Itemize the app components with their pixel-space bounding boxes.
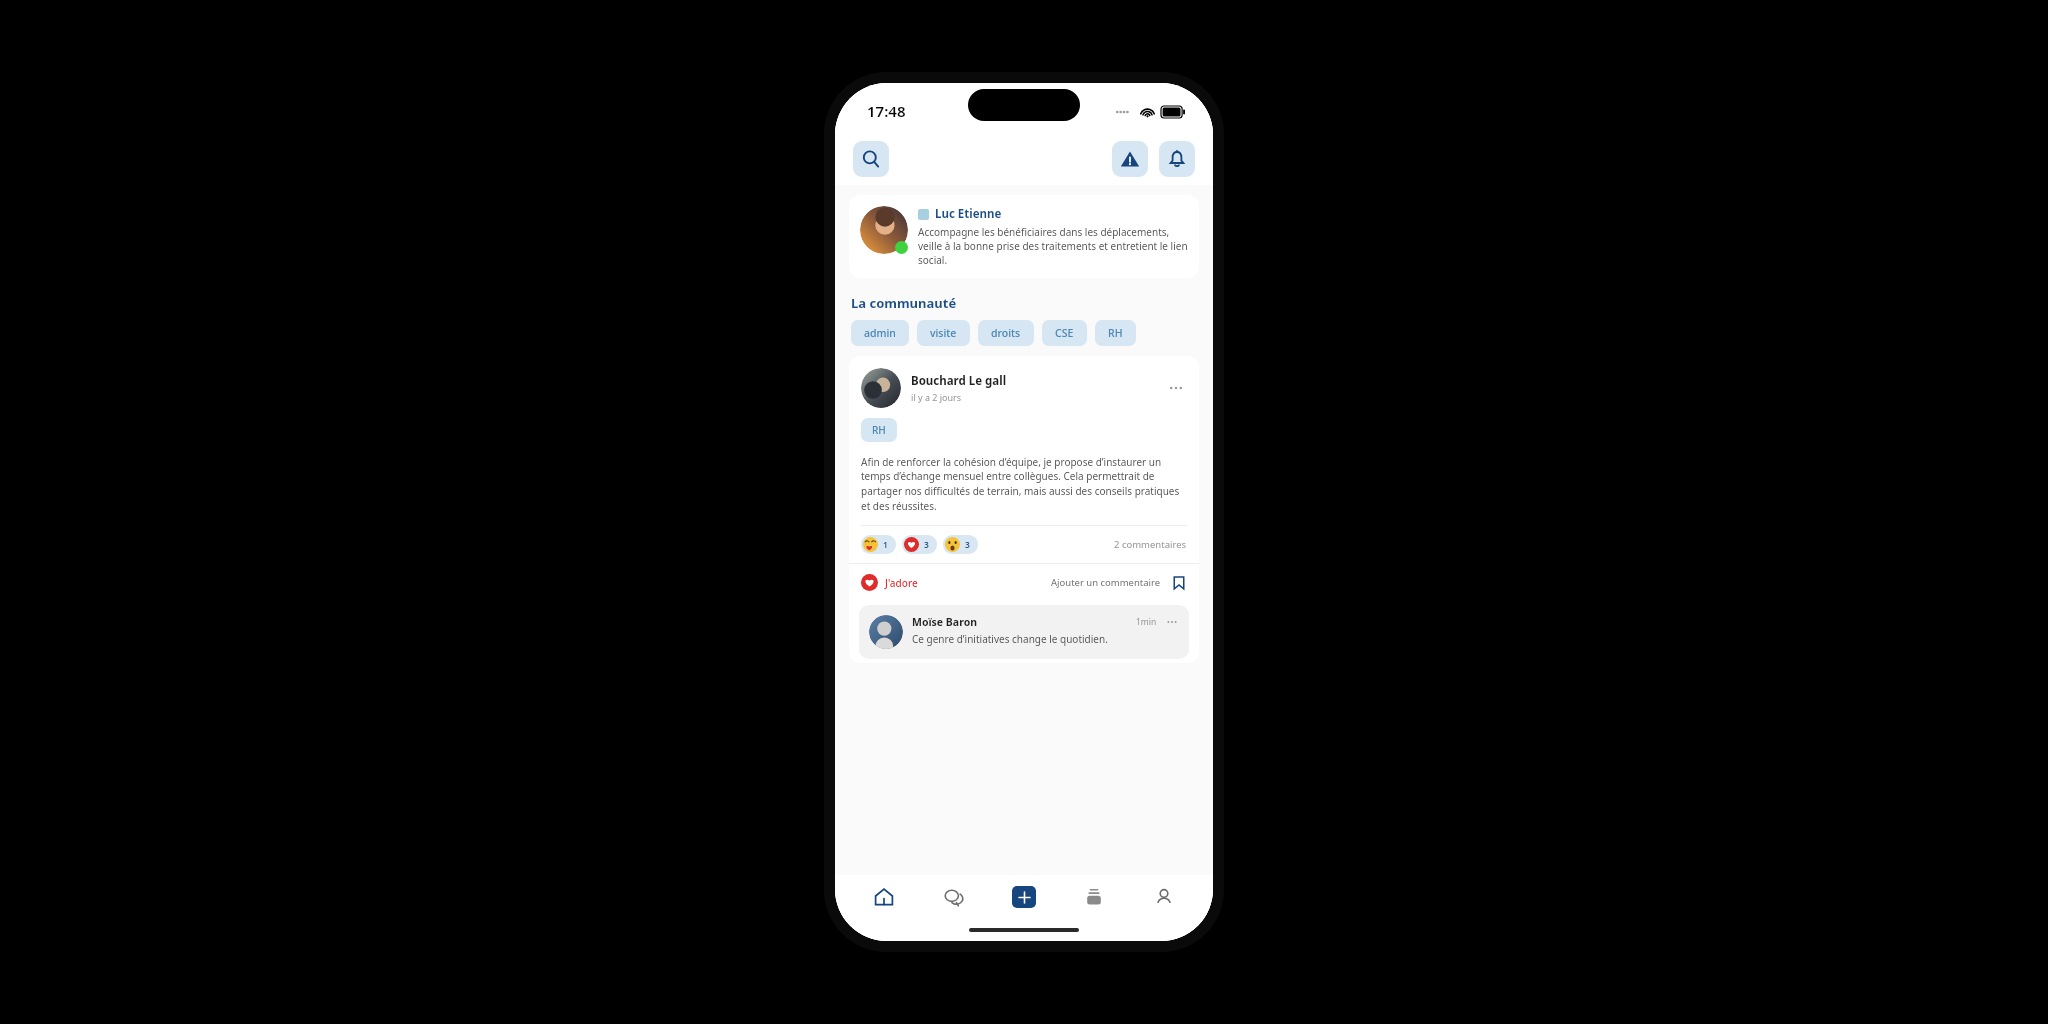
staticText: il y a 2 jours: [911, 391, 962, 403]
staticText: admin: [864, 326, 896, 340]
button[interactable]: Comment options: [1165, 615, 1179, 629]
staticText: Accompagne les bénéficiaires dans les dé…: [918, 225, 1188, 267]
staticText: La communauté: [851, 294, 957, 312]
button[interactable]: Ajouter un commentaire: [1051, 576, 1161, 589]
button[interactable]: Notifications: [1159, 141, 1195, 177]
staticText: 3: [924, 539, 929, 551]
staticText: Bouchard Le gall: [911, 373, 1007, 389]
staticText: Afin de renforcer la cohésion d’équipe, …: [861, 455, 1185, 513]
button[interactable]: Bouchard Le gall: [849, 356, 1199, 408]
button[interactable]: Moïse Baron: [859, 605, 1189, 659]
button[interactable]: Search: [853, 141, 889, 177]
button[interactable]: RH: [861, 418, 897, 442]
staticText: 1: [883, 539, 888, 551]
button[interactable]: droits: [978, 320, 1034, 346]
button[interactable]: 1: [861, 535, 896, 554]
button[interactable]: Profile: [1129, 875, 1199, 919]
staticText: CSE: [1055, 326, 1074, 340]
staticText: visite: [930, 326, 957, 340]
button[interactable]: 2 commentaires: [1114, 538, 1187, 551]
button[interactable]: Alerts: [1112, 141, 1148, 177]
staticText: droits: [991, 326, 1021, 340]
staticText: RH: [1108, 326, 1123, 340]
button[interactable]: Create: [989, 875, 1059, 919]
button[interactable]: admin: [851, 320, 909, 346]
button[interactable]: 3: [902, 535, 937, 554]
button[interactable]: Home: [849, 875, 919, 919]
button[interactable]: Library: [1059, 875, 1129, 919]
staticText: 1min: [1136, 616, 1157, 628]
staticText: Ajouter un commentaire: [1051, 576, 1161, 589]
button[interactable]: More options: [1165, 377, 1187, 399]
button[interactable]: Luc Etienne: [849, 195, 1199, 278]
staticText: Ce genre d’initiatives change le quotidi…: [912, 632, 1108, 646]
button[interactable]: CSE: [1042, 320, 1087, 346]
button[interactable]: visite: [917, 320, 970, 346]
staticText: J'adore: [885, 576, 918, 590]
button[interactable]: J'adore: [861, 572, 918, 593]
staticText: 3: [965, 539, 970, 551]
staticText: 2 commentaires: [1114, 538, 1187, 551]
staticText: RH: [872, 423, 886, 437]
button[interactable]: 3: [943, 535, 978, 554]
staticText: Moïse Baron: [912, 615, 978, 629]
button[interactable]: Bookmark: [1170, 574, 1187, 591]
button[interactable]: Messages: [919, 875, 989, 919]
staticText: Luc Etienne: [935, 206, 1002, 222]
button[interactable]: RH: [1095, 320, 1136, 346]
staticText: 17:48: [867, 101, 906, 121]
